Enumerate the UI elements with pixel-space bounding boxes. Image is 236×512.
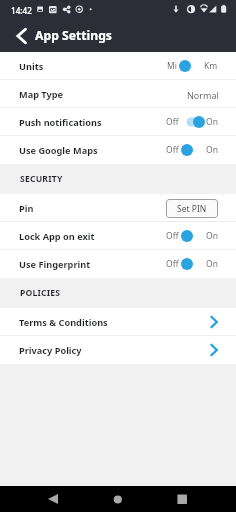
button[interactable]: Back: [0, 20, 33, 52]
button[interactable]: Map Type: [0, 80, 236, 108]
staticText: Push notifications: [19, 116, 102, 129]
button[interactable]: Open: [204, 312, 218, 332]
button[interactable]: Pin: [0, 194, 236, 222]
staticText: Lock App on exit: [19, 230, 95, 243]
staticText: Units: [19, 60, 44, 73]
button[interactable]: Privacy Policy: [0, 336, 236, 364]
staticText: On: [206, 116, 218, 128]
button[interactable]: Use Fingerprint: [0, 250, 236, 278]
button[interactable]: Toggle Off On: [181, 229, 205, 243]
button[interactable]: Open: [204, 340, 218, 360]
staticText: Off: [166, 144, 179, 156]
staticText: 14:42: [11, 5, 32, 16]
staticText: Km: [204, 60, 218, 72]
staticText: Pin: [19, 202, 34, 215]
staticText: App Settings: [35, 27, 112, 44]
staticText: On: [206, 230, 218, 242]
staticText: Use Fingerprint: [19, 258, 91, 271]
staticText: On: [206, 258, 218, 270]
staticText: Mi: [167, 60, 177, 72]
staticText: POLICIES: [20, 287, 61, 299]
staticText: Set PIN: [177, 203, 207, 215]
button[interactable]: Toggle Mi Km: [179, 59, 203, 73]
staticText: Map Type: [19, 88, 64, 101]
button[interactable]: Toggle Off On: [181, 115, 205, 129]
staticText: Off: [166, 258, 179, 270]
staticText: Off: [166, 230, 179, 242]
staticText: Terms & Conditions: [19, 316, 108, 329]
button[interactable]: Set PIN: [166, 199, 218, 218]
button[interactable]: Toggle Off On: [181, 257, 205, 271]
staticText: Use Google Maps: [19, 144, 98, 157]
button[interactable]: Lock App on exit: [0, 222, 236, 250]
button[interactable]: Units: [0, 52, 236, 80]
button[interactable]: Push notifications: [0, 108, 236, 136]
button[interactable]: Use Google Maps: [0, 136, 236, 164]
staticText: On: [206, 144, 218, 156]
staticText: Off: [166, 116, 179, 128]
staticText: SECURITY: [20, 173, 63, 185]
staticText: Privacy Policy: [19, 344, 82, 357]
button[interactable]: Terms & Conditions: [0, 308, 236, 336]
staticText: Normal: [187, 89, 219, 101]
button[interactable]: Toggle Off On: [181, 143, 205, 157]
